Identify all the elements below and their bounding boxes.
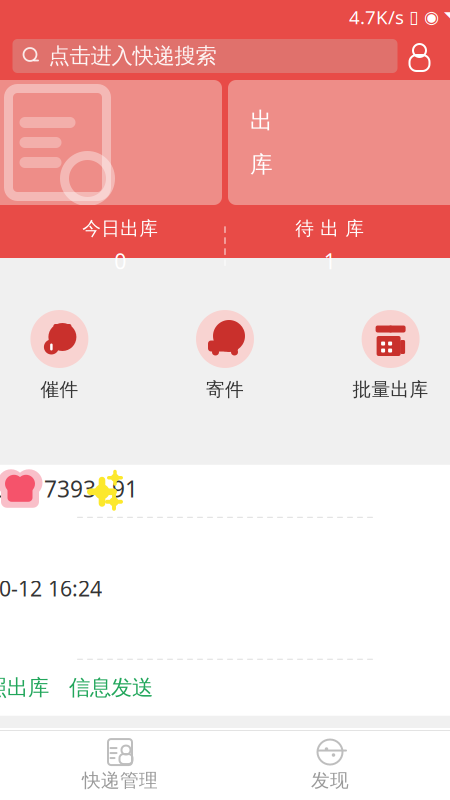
staticText: 0 bbox=[114, 247, 126, 275]
staticText: 寄件 bbox=[206, 378, 244, 401]
staticText: 今日出库 bbox=[82, 217, 158, 240]
button[interactable]: 批量出库 bbox=[308, 310, 450, 401]
button[interactable]: 发现 bbox=[225, 731, 435, 798]
staticText: 入库时间：2018-10-12 16:24 bbox=[0, 574, 102, 602]
staticText: 待 出 库 bbox=[295, 217, 364, 240]
button[interactable]: Account bbox=[397, 39, 441, 73]
staticText: ◉ bbox=[424, 7, 439, 27]
staticText: 信息发送 bbox=[69, 675, 153, 701]
staticText: ◥ bbox=[444, 8, 450, 26]
staticText: 91 bbox=[112, 474, 138, 504]
staticText: ▯ bbox=[409, 7, 419, 27]
button[interactable]: 催件 bbox=[0, 310, 142, 401]
staticText: 库 bbox=[250, 150, 273, 178]
staticText: 催件 bbox=[40, 378, 78, 401]
staticText: 拍照出库 bbox=[0, 675, 49, 701]
staticText: 点击进入快递搜索 bbox=[48, 43, 216, 69]
button[interactable]: 出 bbox=[228, 80, 450, 205]
staticText: 4.7K/s bbox=[349, 5, 404, 29]
staticText: 发现 bbox=[311, 769, 349, 792]
button[interactable]: 快递管理 bbox=[15, 731, 225, 798]
staticText: 1 bbox=[324, 247, 336, 275]
button[interactable]: 信息发送 bbox=[49, 675, 153, 701]
button[interactable]: 拍照出库 bbox=[0, 675, 49, 701]
staticText: 出 bbox=[250, 107, 273, 134]
button[interactable]: 入 bbox=[0, 80, 222, 205]
button[interactable]: 点击进入快递搜索 bbox=[12, 39, 397, 73]
staticText: 712 bbox=[0, 474, 4, 504]
staticText: 快递管理 bbox=[82, 769, 158, 792]
button[interactable]: 寄件 bbox=[142, 310, 308, 401]
staticText: 7393 bbox=[44, 474, 96, 504]
staticText: 批量出库 bbox=[353, 378, 429, 401]
